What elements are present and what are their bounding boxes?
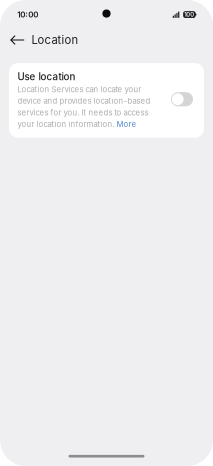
staticText: device and provides location-based <box>17 96 150 106</box>
staticText: Use location <box>17 71 75 83</box>
button[interactable]: Back <box>5 27 29 52</box>
staticText: Location <box>32 33 79 47</box>
staticText: your location information. <box>17 119 116 129</box>
button[interactable]: Use location <box>171 92 193 106</box>
staticText: services for you. It needs to access <box>17 108 148 117</box>
staticText: 100 <box>184 11 194 18</box>
button[interactable]: More <box>116 119 136 129</box>
staticText: 10:00 <box>17 10 38 19</box>
staticText: More <box>116 119 136 129</box>
staticText: Location Services can locate your <box>17 85 141 94</box>
